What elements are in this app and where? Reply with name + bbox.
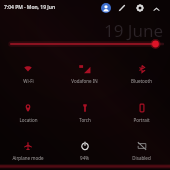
staticText: 7:04 PM · Mon, 19 Jun bbox=[4, 4, 56, 11]
staticText: 94% bbox=[80, 155, 89, 161]
button[interactable]: Portrait bbox=[113, 104, 170, 126]
staticText: Vodafone IN bbox=[71, 78, 98, 84]
button[interactable]: Bluetooth bbox=[113, 65, 170, 87]
button[interactable]: Brightness bbox=[0, 36, 170, 51]
staticText: Disabled bbox=[132, 155, 151, 161]
button[interactable]: Collapse bbox=[151, 4, 161, 14]
staticText: Airplane mode bbox=[12, 155, 44, 161]
button[interactable]: 94% bbox=[56, 142, 113, 164]
button[interactable]: Airplane mode bbox=[0, 142, 56, 164]
button[interactable]: Disabled bbox=[113, 142, 170, 164]
staticText: 19 June bbox=[104, 19, 164, 42]
staticText: Bluetooth bbox=[131, 78, 152, 84]
button[interactable]: Vodafone IN bbox=[56, 65, 113, 87]
button[interactable]: Torch bbox=[56, 104, 113, 126]
button[interactable]: Account bbox=[101, 3, 111, 13]
button[interactable]: Settings bbox=[135, 3, 145, 13]
staticText: Wi-Fi bbox=[23, 78, 34, 84]
button[interactable]: Location bbox=[0, 104, 56, 126]
button[interactable]: Edit bbox=[117, 3, 127, 13]
staticText: Portrait bbox=[133, 117, 150, 123]
staticText: Torch bbox=[79, 117, 91, 123]
button[interactable]: Wi-Fi bbox=[0, 65, 56, 87]
staticText: Location bbox=[19, 117, 38, 123]
